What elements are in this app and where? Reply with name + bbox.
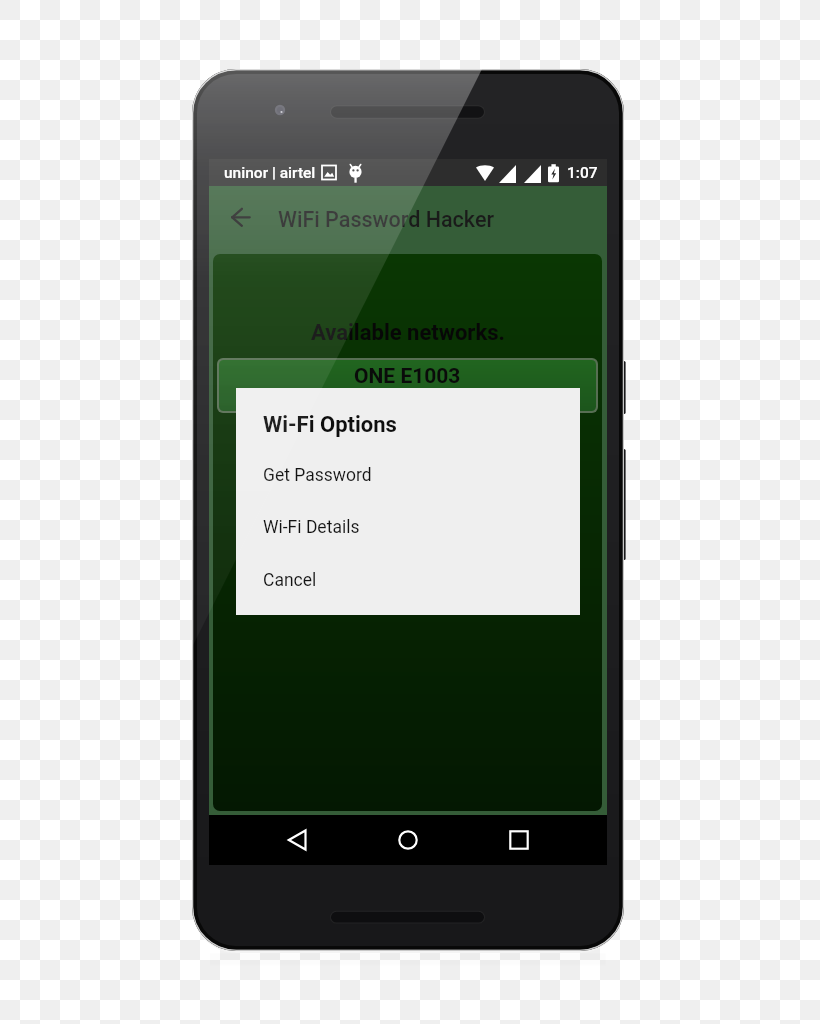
staticText: 1:07 [567, 164, 598, 182]
button[interactable]: ONE E1003 [219, 360, 596, 411]
staticText: Get Password [263, 465, 372, 486]
button[interactable]: Wi-Fi Details [236, 510, 580, 544]
button[interactable]: Get Password [236, 458, 580, 492]
button[interactable]: Back [270, 815, 326, 865]
button[interactable]: Navigate up [209, 186, 272, 248]
staticText: Available networks. [311, 320, 505, 346]
button[interactable]: Home [380, 815, 436, 865]
button[interactable]: Recent apps [491, 815, 547, 865]
staticText: Wi-Fi Options [263, 412, 397, 438]
staticText: WiFi Password Hacker [278, 207, 494, 232]
staticText: Cancel [263, 570, 317, 591]
staticText: Wi-Fi Details [263, 517, 360, 538]
staticText: uninor | airtel [224, 164, 316, 182]
button[interactable]: Cancel [236, 563, 580, 597]
staticText: ONE E1003 [354, 364, 461, 389]
